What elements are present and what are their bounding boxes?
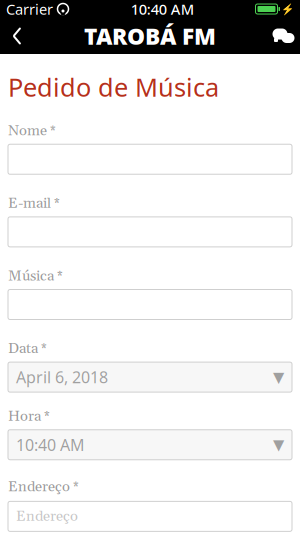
button[interactable]: 10:40 AM — [8, 430, 292, 460]
staticText: Música — [8, 267, 54, 285]
button[interactable] — [8, 289, 292, 319]
staticText: E-mail — [8, 194, 51, 213]
staticText: * — [47, 123, 56, 138]
staticText: 10:40 AM — [131, 0, 194, 19]
staticText: * — [41, 409, 50, 424]
button[interactable]: Endereço — [8, 501, 292, 531]
staticText: 10:40 AM — [16, 434, 85, 455]
staticText: Carrier — [6, 0, 53, 19]
button[interactable]: Back — [0, 18, 34, 54]
staticText: * — [38, 341, 47, 356]
button[interactable] — [8, 217, 292, 247]
staticText: * — [70, 479, 79, 495]
staticText: Nome — [8, 122, 47, 140]
staticText: ▼ — [273, 436, 284, 453]
staticText: * — [54, 269, 63, 284]
staticText: April 6, 2018 — [16, 366, 108, 388]
staticText: Data — [8, 339, 38, 358]
staticText: TAROBÁ FM — [84, 21, 216, 51]
staticText: Endereço — [16, 507, 78, 526]
staticText: Pedido de Música — [8, 70, 219, 104]
button[interactable] — [8, 144, 292, 174]
button[interactable]: Chat — [266, 18, 300, 54]
staticText: ⚡ — [281, 3, 294, 15]
staticText: * — [51, 196, 60, 211]
button[interactable]: April 6, 2018 — [8, 362, 292, 392]
staticText: Hora — [8, 407, 41, 426]
staticText: Endereço — [8, 478, 70, 496]
staticText: ▼ — [273, 369, 284, 385]
